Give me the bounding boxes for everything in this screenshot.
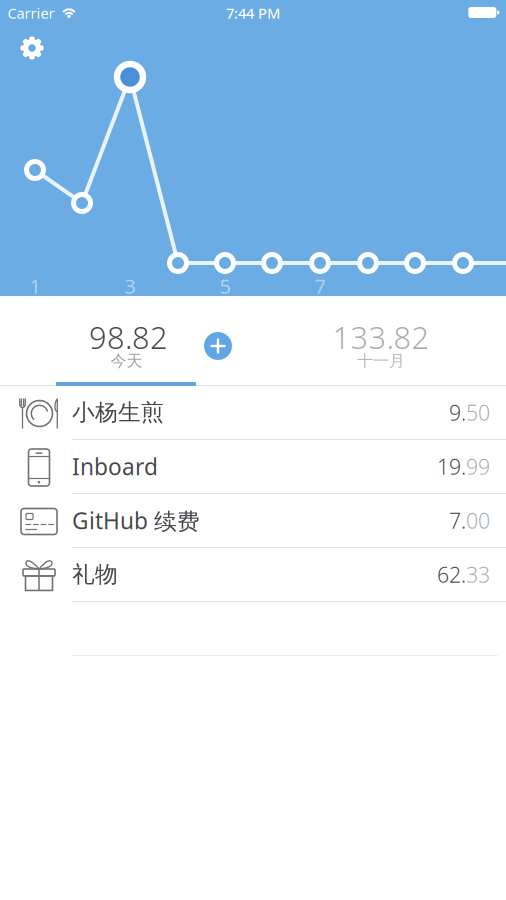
staticText: 7. [449,506,466,535]
staticText: 礼物 [72,561,118,588]
staticText: 9. [449,398,466,427]
staticText: 今天 [110,351,142,371]
staticText: 1 [29,273,40,299]
staticText: Inboard [72,451,158,481]
staticText: 7 [314,273,325,299]
button[interactable]: 礼物 [0,548,506,601]
staticText: 133.82 [332,317,429,357]
button[interactable]: 小杨生煎 [0,386,506,439]
staticText: 小杨生煎 [72,399,164,426]
button[interactable]: 98.82 [51,314,201,378]
button[interactable]: Add expense [204,332,232,360]
staticText: 33 [466,560,490,589]
staticText: 5 [219,273,230,299]
staticText: 3 [124,273,135,299]
staticText: 7:44 PM [226,3,280,23]
staticText: 99 [466,452,490,481]
button[interactable]: GitHub 续费 [0,494,506,547]
staticText: 十一月 [357,351,405,371]
staticText: Carrier [7,3,54,23]
staticText: GitHub 续费 [72,505,200,536]
staticText: 50 [466,398,490,427]
staticText: 62. [437,560,466,589]
button[interactable]: Inboard [0,440,506,493]
staticText: 98.82 [89,317,168,357]
button[interactable]: Settings [20,36,44,60]
button[interactable]: 133.82 [306,314,456,378]
staticText: 19. [437,452,466,481]
staticText: 00 [466,506,490,535]
